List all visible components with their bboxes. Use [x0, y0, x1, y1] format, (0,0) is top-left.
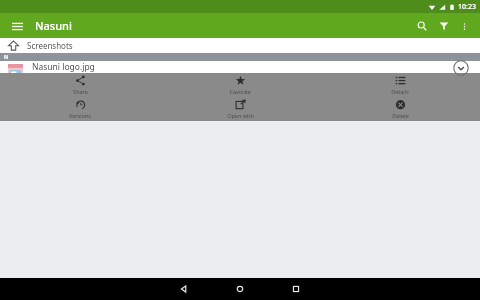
- staticText: 10:23: [458, 2, 476, 12]
- staticText: Favorite: [230, 88, 251, 95]
- button[interactable]: Open with: [160, 97, 320, 121]
- button[interactable]: Details: [320, 73, 480, 97]
- button[interactable]: Versions: [0, 97, 160, 121]
- button[interactable]: Favorite: [160, 73, 320, 97]
- button[interactable]: Back: [169, 278, 199, 300]
- button[interactable]: Share: [0, 73, 160, 97]
- button[interactable]: Collapse actions: [452, 59, 470, 77]
- staticText: Nasuni: [35, 18, 72, 33]
- button[interactable]: Open navigation drawer: [7, 16, 27, 36]
- button[interactable]: Filter: [433, 15, 455, 37]
- staticText: Share: [73, 88, 88, 95]
- staticText: Delete: [392, 112, 409, 119]
- button[interactable]: More options: [455, 17, 473, 35]
- staticText: Screenshots: [27, 40, 73, 51]
- staticText: Nasuni logo.jpg: [32, 61, 95, 73]
- button[interactable]: Home: [225, 278, 255, 300]
- staticText: Details: [391, 88, 409, 95]
- staticText: Open with: [227, 112, 254, 119]
- staticText: 939.51 KB, 10 minutes ago: [32, 74, 107, 82]
- button[interactable]: Screenshots: [0, 38, 480, 53]
- button[interactable]: Recent apps: [281, 278, 311, 300]
- staticText: Versions: [69, 112, 91, 119]
- button[interactable]: Search: [411, 15, 433, 37]
- button[interactable]: Delete: [320, 97, 480, 121]
- button[interactable]: Nasuni logo.jpg: [0, 61, 480, 82]
- staticText: N: [4, 54, 9, 61]
